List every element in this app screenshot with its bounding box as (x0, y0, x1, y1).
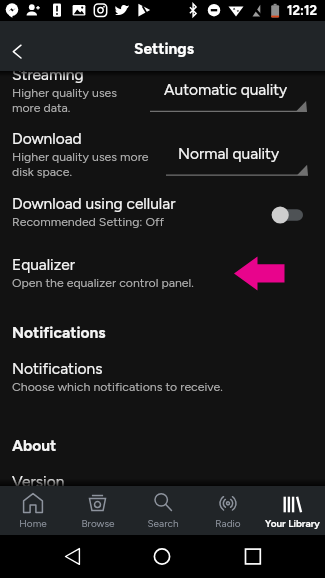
button[interactable] (0, 353, 325, 401)
staticText: Notifications (12, 323, 106, 342)
staticText: Search (147, 517, 179, 529)
button[interactable]: Home (142, 535, 183, 578)
staticText: Equalizer (12, 255, 76, 274)
button[interactable]: Your Library (260, 486, 325, 535)
staticText: Streaming (12, 65, 84, 84)
staticText: Your Library (265, 517, 320, 529)
staticText: Recommended Setting: Off (12, 214, 165, 229)
button[interactable] (0, 188, 325, 236)
button[interactable]: Search (130, 486, 195, 535)
staticText: Radio (215, 517, 241, 529)
staticText: About (12, 436, 57, 455)
staticText: Higher quality uses (12, 85, 118, 100)
staticText: disk space. (12, 164, 72, 179)
staticText: Notifications (12, 359, 103, 378)
staticText: Download using cellular (12, 194, 176, 213)
staticText: Home (19, 517, 47, 529)
button[interactable]: Recent apps (233, 535, 274, 578)
button[interactable]: Back (0, 26, 40, 66)
staticText: 12:12 (287, 3, 317, 19)
button[interactable]: Radio (195, 486, 260, 535)
button[interactable]: Download using cellular (270, 206, 303, 224)
button[interactable] (0, 58, 325, 184)
staticText: Automatic quality (164, 80, 288, 99)
staticText: Normal quality (178, 144, 280, 163)
staticText: Open the equalizer control panel. (12, 275, 194, 290)
staticText: Choose which notifications to receive. (12, 379, 223, 394)
button[interactable]: Automatic quality (150, 74, 307, 117)
staticText: Higher quality uses more (12, 149, 149, 164)
button[interactable] (0, 249, 325, 297)
button[interactable]: Home (0, 486, 65, 535)
staticText: Version (12, 472, 65, 491)
staticText: Download (12, 129, 82, 148)
button[interactable]: Back (52, 535, 93, 578)
button[interactable]: Browse (65, 486, 130, 535)
staticText: more data. (12, 100, 71, 115)
staticText: Browse (81, 517, 115, 529)
button[interactable]: Normal quality (166, 138, 308, 181)
staticText: Settings (134, 39, 194, 58)
